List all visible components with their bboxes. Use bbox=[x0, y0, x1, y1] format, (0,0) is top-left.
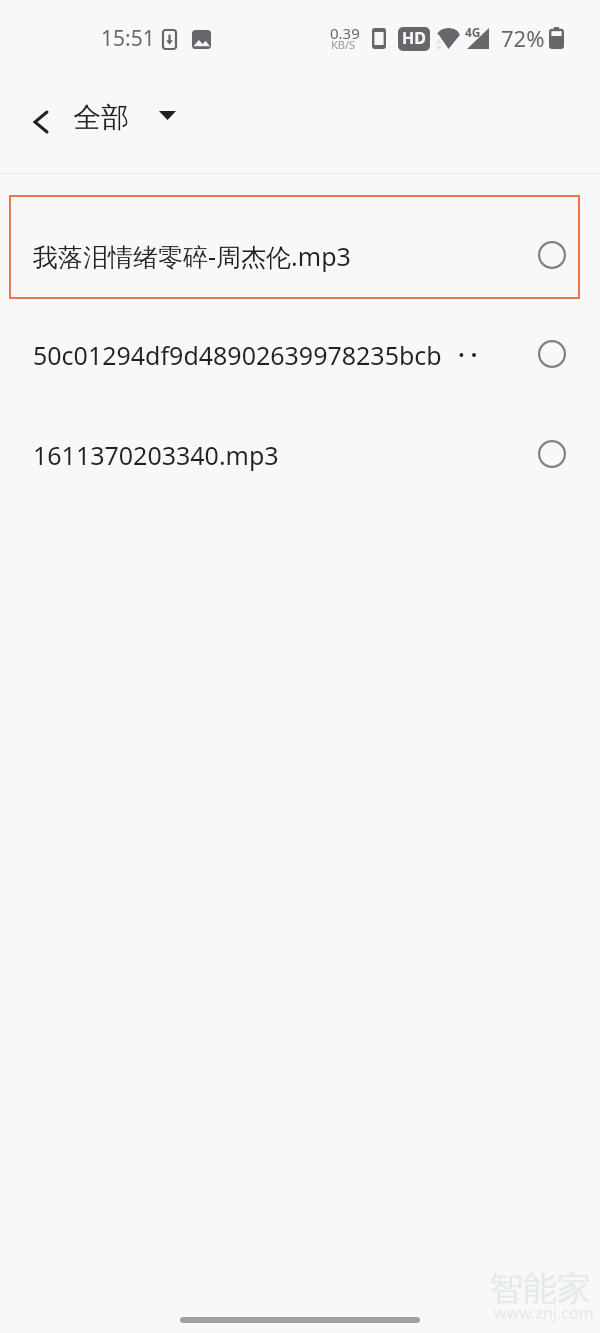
staticText: 智能家 bbox=[489, 1267, 591, 1310]
staticText: 1611370203340.mp3 bbox=[33, 438, 528, 472]
staticText: 0.39 bbox=[330, 23, 360, 43]
button[interactable]: 全部 bbox=[73, 90, 176, 142]
button[interactable]: 50c01294df9d48902639978235bcb bbox=[0, 299, 600, 399]
staticText: 4G bbox=[465, 24, 481, 40]
staticText: 我落泪情绪零碎-周杰伦.mp3 bbox=[33, 239, 528, 273]
other: Downloads bbox=[163, 30, 176, 49]
staticText: HD bbox=[402, 27, 426, 49]
staticText: 15:51 bbox=[101, 24, 155, 53]
staticText: KB/S bbox=[331, 37, 356, 52]
other: SIM bbox=[372, 28, 386, 49]
other: Wi-Fi bbox=[437, 28, 460, 49]
button[interactable]: 1611370203340.mp3 bbox=[0, 399, 600, 499]
button[interactable]: 我落泪情绪零碎-周杰伦.mp3 bbox=[9, 195, 580, 299]
other: Screenshot bbox=[192, 30, 211, 49]
staticText: 50c01294df9d48902639978235bcb bbox=[33, 338, 528, 372]
button[interactable]: Back bbox=[15, 96, 67, 148]
staticText: 72% bbox=[501, 23, 545, 53]
staticText: www.znj.com bbox=[494, 1302, 594, 1324]
staticText: 全部 bbox=[73, 100, 129, 135]
